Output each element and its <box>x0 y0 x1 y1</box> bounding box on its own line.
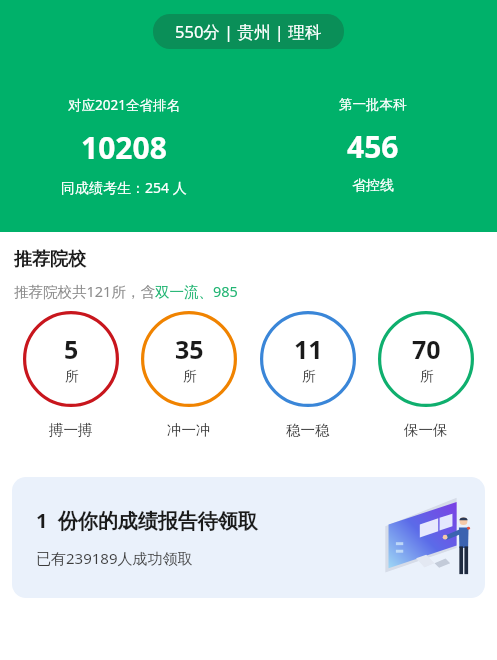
button[interactable]: 1 份你的成绩报告待领取 <box>12 477 485 598</box>
staticText: 推荐院校 <box>14 248 86 271</box>
other: 成绩报告插图 <box>383 496 475 580</box>
staticText: 所 <box>302 368 316 386</box>
staticText: 保一保 <box>404 421 448 439</box>
button[interactable]: 第一批本科 <box>248 96 497 195</box>
staticText: 搏一搏 <box>49 421 93 439</box>
staticText: 11 <box>294 332 323 366</box>
staticText: 35 <box>175 332 204 366</box>
staticText: 10208 <box>81 127 167 168</box>
staticText: 1 份你的成绩报告待领取 <box>36 507 258 534</box>
staticText: 所 <box>65 368 79 386</box>
staticText: 同成绩考生：254 人 <box>61 178 187 197</box>
button[interactable]: 对应2021全省排名 <box>0 96 248 197</box>
button[interactable]: 5 <box>23 311 119 439</box>
staticText: 冲一冲 <box>167 421 211 439</box>
staticText: 所 <box>183 368 197 386</box>
staticText: 所 <box>420 368 434 386</box>
staticText: 第一批本科 <box>339 96 407 113</box>
button[interactable]: 70 <box>378 311 474 439</box>
staticText: 已有239189人成功领取 <box>36 548 193 568</box>
staticText: 550分 | 贵州 | 理科 <box>175 20 322 43</box>
staticText: 推荐院校共121所，含双一流、985 <box>14 281 238 301</box>
staticText: 5 <box>64 332 79 366</box>
staticText: 456 <box>347 126 399 167</box>
button[interactable]: 550分 | 贵州 | 理科 <box>153 14 344 49</box>
staticText: 对应2021全省排名 <box>68 96 180 114</box>
staticText: 稳一稳 <box>286 421 330 439</box>
staticText: 省控线 <box>352 177 394 195</box>
button[interactable]: 11 <box>260 311 356 439</box>
staticText: 70 <box>412 332 441 366</box>
button[interactable]: 推荐院校 <box>0 248 497 301</box>
button[interactable]: 35 <box>141 311 237 439</box>
